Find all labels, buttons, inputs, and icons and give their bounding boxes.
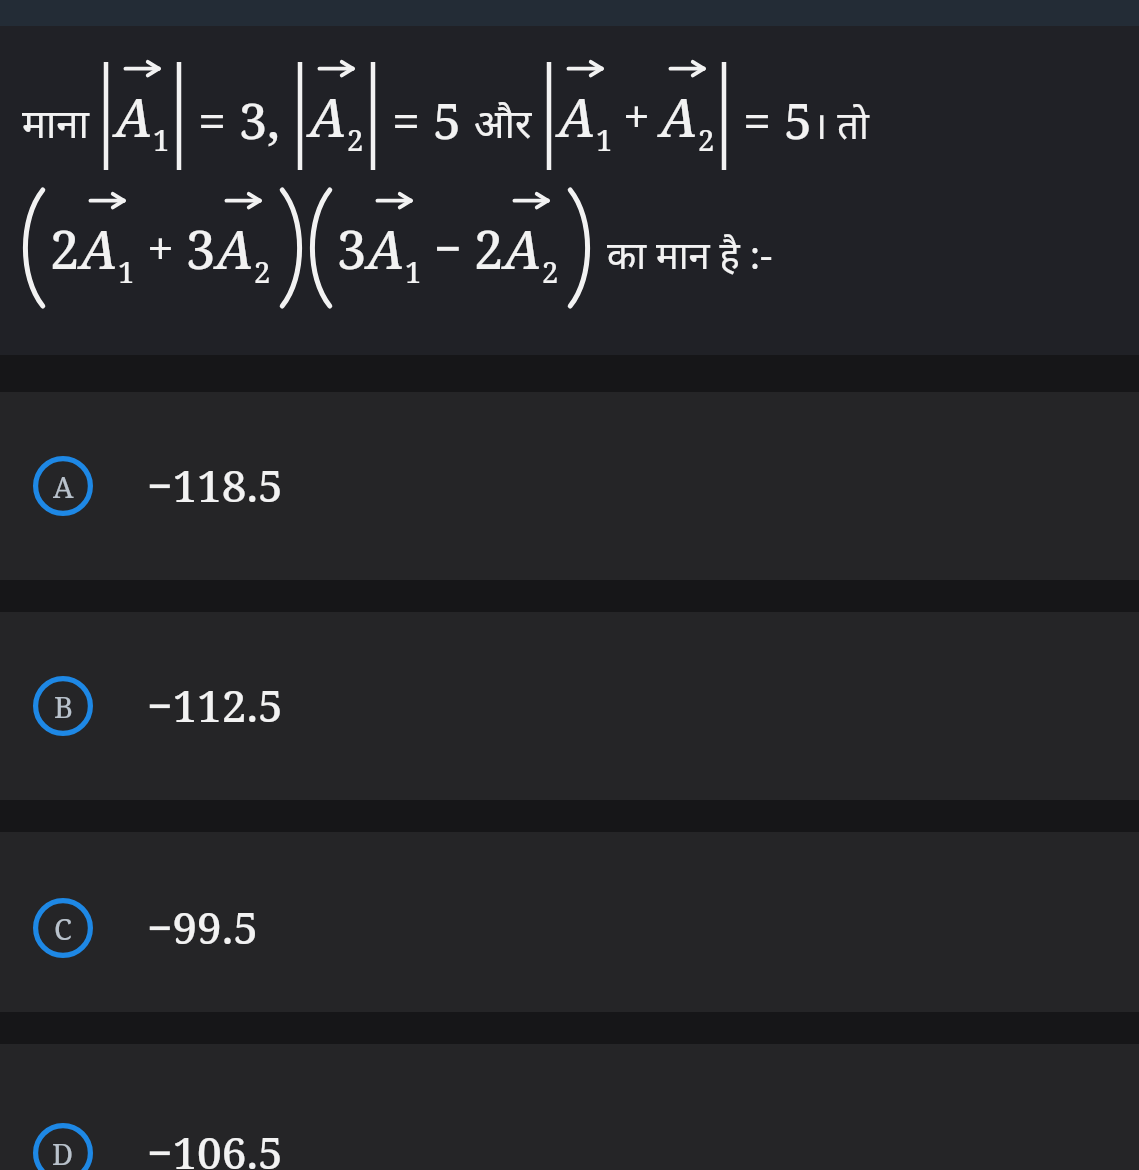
staticText: −112.5 [147, 675, 283, 735]
staticText: 2 [254, 252, 271, 291]
button[interactable]: A [0, 392, 1139, 580]
staticText: B [54, 687, 73, 726]
staticText: A [309, 81, 347, 152]
staticText: 2 [474, 213, 504, 284]
staticText: 2 [542, 252, 559, 291]
staticText: −106.5 [147, 1122, 283, 1170]
button[interactable]: D [0, 1044, 1139, 1170]
staticText: 3 [337, 213, 367, 284]
staticText: A [115, 81, 153, 152]
staticText: − [434, 215, 462, 280]
staticText: = 5 [392, 86, 462, 154]
staticText: C [54, 909, 72, 948]
staticText: 1 [596, 120, 613, 159]
staticText: A [558, 81, 596, 152]
staticText: 1 [118, 252, 135, 291]
staticText: D [52, 1134, 74, 1170]
staticText: −99.5 [147, 897, 258, 957]
staticText: + [147, 215, 174, 280]
staticText: 1 [153, 120, 170, 159]
staticText: A [53, 467, 74, 506]
staticText: A [367, 213, 405, 284]
staticText: 2 [347, 120, 364, 159]
staticText: और [474, 95, 532, 149]
button[interactable]: B [0, 612, 1139, 800]
staticText: 1 [405, 252, 422, 291]
staticText: A [216, 213, 254, 284]
staticText: −118.5 [147, 455, 283, 515]
button[interactable]: C [0, 832, 1139, 1012]
staticText: = 3, [198, 86, 281, 154]
staticText: 2 [50, 213, 80, 284]
staticText: 2 [698, 120, 715, 159]
staticText: = 5 [743, 86, 813, 154]
staticText: माना [22, 95, 89, 149]
staticText: 3 [186, 213, 216, 284]
staticText: A [80, 213, 118, 284]
staticText: A [660, 81, 698, 152]
staticText: का मान है :- [607, 228, 773, 280]
staticText: A [504, 213, 542, 284]
staticText: + [623, 83, 650, 148]
staticText: । तो [813, 98, 869, 150]
